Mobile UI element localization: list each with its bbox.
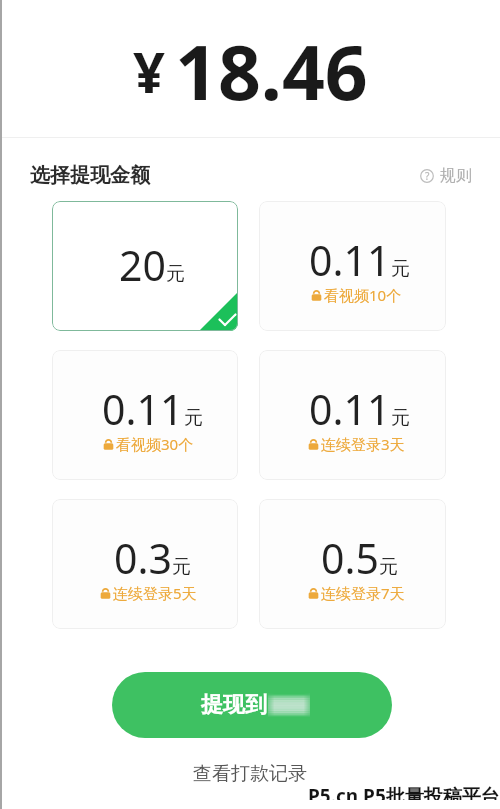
staticText: ¥ [133,33,166,109]
button[interactable]: 20 [52,201,238,331]
button[interactable]: 规则 [416,162,476,190]
button[interactable]: 0.3 [52,499,238,629]
staticText: 提现到 [201,691,267,719]
button[interactable]: 0.11 [259,350,446,480]
button[interactable]: 0.11 [259,201,446,331]
staticText: 连续登录3天 [321,434,405,454]
staticText: 看视频10个 [324,285,402,305]
staticText: 选择提现金额 [30,163,150,188]
staticText: 18.46 [175,20,368,122]
staticText: 0.11 [309,232,391,288]
staticText: 连续登录7天 [321,583,405,603]
staticText: 规则 [440,166,472,186]
staticText: 元 [166,262,185,286]
button[interactable]: 0.5 [259,499,446,629]
staticText: 0.11 [309,381,391,437]
staticText: 0.3 [114,530,172,586]
staticText: 连续登录5天 [113,583,197,603]
staticText: P5.cn P5批量投稿平台 [308,783,500,800]
button[interactable]: 查看打款记录 [187,756,313,792]
staticText: 元 [391,406,410,430]
staticText: 元 [172,555,191,579]
staticText: 20 [119,237,166,293]
staticText: 元 [379,555,398,579]
staticText: 0.5 [321,530,379,586]
staticText: 0.11 [102,381,184,437]
staticText: ? [425,169,430,183]
button[interactable]: 0.11 [52,350,238,480]
staticText: 元 [184,406,203,430]
button[interactable]: 提现到 [112,672,392,738]
staticText: 看视频30个 [116,434,194,454]
staticText: 元 [391,257,410,281]
